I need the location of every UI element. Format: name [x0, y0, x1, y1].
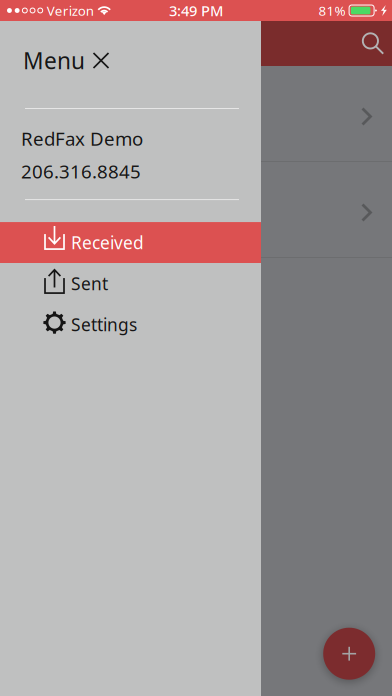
staticText: 3:49 PM [169, 1, 223, 20]
button[interactable]: Received [0, 222, 261, 263]
button[interactable]: Open fax [0, 162, 392, 257]
staticText: Received [71, 231, 144, 254]
button[interactable]: Settings [0, 304, 261, 345]
staticText: Sent [71, 272, 108, 295]
staticText: Menu [23, 45, 85, 75]
staticText: Settings [71, 313, 137, 336]
button[interactable]: Open fax [0, 66, 392, 161]
button[interactable]: Sent [0, 263, 261, 304]
staticText: 81% [319, 2, 346, 19]
button[interactable]: Search [349, 21, 392, 65]
staticText: Verizon [47, 2, 94, 19]
staticText: 206.316.8845 [21, 159, 141, 184]
button[interactable]: New fax [323, 628, 375, 680]
staticText: RedFax Demo [21, 126, 143, 151]
button[interactable]: Close menu [85, 48, 117, 80]
